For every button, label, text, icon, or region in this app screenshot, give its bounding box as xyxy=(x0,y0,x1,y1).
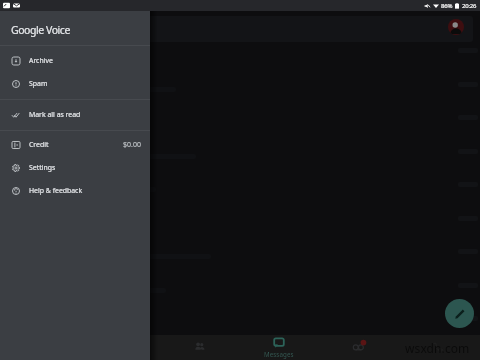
staticText: Archive xyxy=(29,56,53,65)
button[interactable]: Credit xyxy=(0,133,150,156)
button[interactable] xyxy=(8,136,480,166)
button[interactable] xyxy=(8,102,480,132)
button[interactable]: Mark all as read xyxy=(0,103,150,126)
staticText: 20:26 xyxy=(462,2,477,10)
button[interactable]: Compose new message xyxy=(445,299,474,328)
button[interactable] xyxy=(8,35,480,65)
button[interactable]: Settings xyxy=(0,156,150,179)
staticText: wsxdn.com xyxy=(405,340,470,356)
button[interactable]: Voicemail xyxy=(322,335,394,360)
button[interactable] xyxy=(8,303,480,333)
button[interactable]: Calls xyxy=(401,335,473,360)
staticText: Mark all as read xyxy=(29,110,81,119)
staticText: Credit xyxy=(29,140,49,149)
button[interactable]: Archive xyxy=(0,49,150,72)
staticText: Messages xyxy=(264,350,294,358)
button[interactable] xyxy=(8,69,480,99)
button[interactable]: Help & feedback xyxy=(0,179,150,202)
staticText: Google Voice xyxy=(11,23,70,37)
button[interactable]: Account xyxy=(8,16,473,42)
staticText: Settings xyxy=(29,163,56,172)
staticText: Help & feedback xyxy=(29,186,83,195)
staticText: Spam xyxy=(29,79,48,88)
staticText: $0.00 xyxy=(123,140,141,150)
button[interactable] xyxy=(8,203,480,233)
button[interactable]: Account xyxy=(448,19,464,35)
staticText: 86% xyxy=(441,2,453,10)
button[interactable] xyxy=(8,236,480,266)
button[interactable] xyxy=(8,169,480,199)
button[interactable]: Spam xyxy=(0,72,150,95)
button[interactable]: Messages xyxy=(243,335,315,360)
button[interactable] xyxy=(8,270,480,300)
